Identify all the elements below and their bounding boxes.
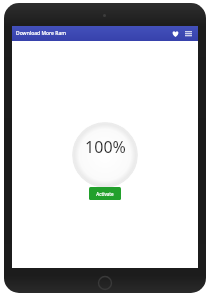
staticText: Activate xyxy=(96,191,114,197)
staticText: 100% xyxy=(85,136,126,158)
staticText: Download More Ram xyxy=(16,30,67,37)
button[interactable]: Home xyxy=(97,275,113,291)
button[interactable]: Download More Ram xyxy=(16,30,67,37)
button[interactable]: Menu xyxy=(182,26,195,41)
button[interactable]: Activate xyxy=(89,187,121,200)
button[interactable]: Favorite xyxy=(169,26,182,41)
